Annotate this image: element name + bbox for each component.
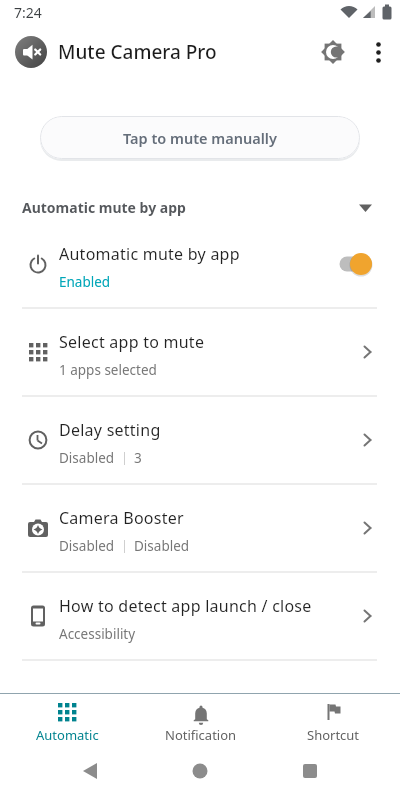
staticText: Disabled: [59, 537, 115, 555]
button[interactable]: [366, 40, 390, 64]
staticText: 7:24: [14, 3, 42, 22]
staticText: Delay setting: [59, 419, 161, 441]
button[interactable]: Camera Booster: [0, 485, 400, 571]
staticText: How to detect app launch / close: [59, 595, 312, 617]
button[interactable]: Shortcut: [267, 694, 400, 750]
staticText: 3: [134, 449, 142, 467]
staticText: Enabled: [59, 273, 111, 291]
staticText: Shortcut: [307, 726, 360, 744]
staticText: Accessibility: [59, 625, 136, 643]
staticText: Automatic mute by app: [59, 243, 240, 265]
button[interactable]: Select app to mute: [0, 309, 400, 395]
staticText: Select app to mute: [59, 331, 205, 353]
button[interactable]: How to detect app launch / close: [0, 573, 400, 659]
staticText: Notification: [165, 726, 237, 744]
staticText: Camera Booster: [59, 507, 184, 529]
staticText: Tap to mute manually: [123, 128, 277, 148]
button[interactable]: Notification: [134, 694, 267, 750]
button[interactable]: [321, 40, 345, 64]
staticText: Disabled: [134, 537, 190, 555]
button[interactable]: Tap to mute manually: [40, 116, 360, 159]
staticText: Mute Camera Pro: [58, 39, 217, 65]
staticText: Automatic: [36, 726, 99, 744]
button[interactable]: Delay setting: [0, 397, 400, 483]
staticText: Disabled: [59, 449, 115, 467]
button[interactable]: Automatic: [0, 694, 134, 750]
button[interactable]: Automatic mute by app: [0, 221, 400, 307]
staticText: 1 apps selected: [59, 361, 157, 379]
staticText: Automatic mute by app: [22, 198, 186, 217]
